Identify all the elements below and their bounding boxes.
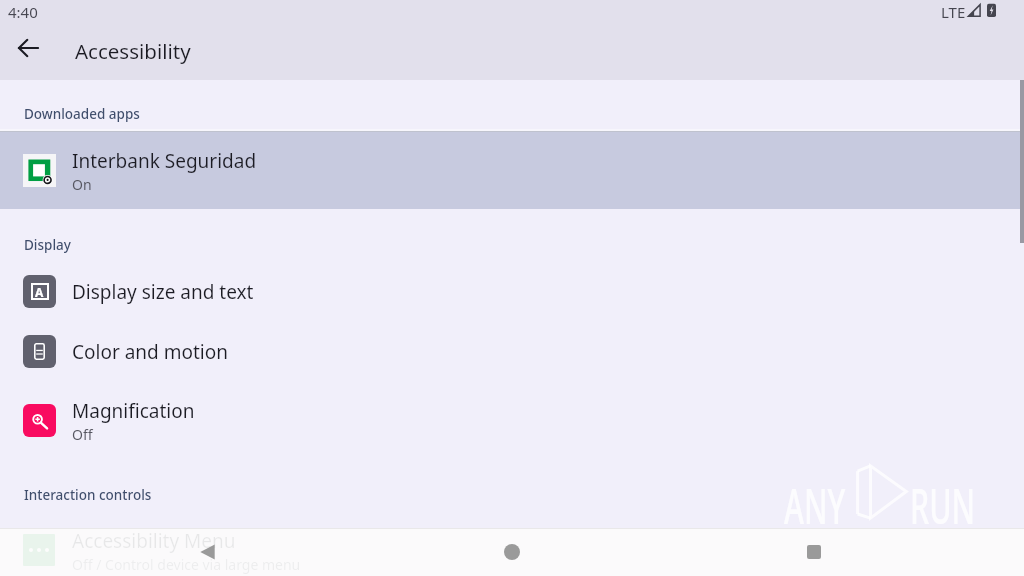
- staticText: A: [35, 284, 44, 300]
- staticText: Downloaded apps: [24, 105, 140, 123]
- staticText: ANY: [784, 472, 845, 539]
- staticText: LTE: [941, 2, 966, 22]
- staticText: Display size and text: [72, 279, 254, 305]
- staticText: Accessibility: [75, 37, 191, 65]
- button[interactable]: Magnification: [0, 390, 1024, 450]
- staticText: On: [72, 175, 92, 194]
- button[interactable]: Home: [480, 528, 544, 576]
- staticText: Accessibility Menu: [72, 528, 236, 554]
- button[interactable]: Interbank Seguridad: [0, 131, 1024, 209]
- button[interactable]: Back: [175, 528, 239, 576]
- staticText: Off / Control device via large menu: [72, 555, 301, 574]
- staticText: RUN: [910, 472, 976, 539]
- staticText: Magnification: [72, 398, 195, 424]
- staticText: Interaction controls: [24, 486, 152, 504]
- button[interactable]: Navigate up: [10, 30, 46, 66]
- staticText: Display: [24, 236, 71, 254]
- staticText: Color and motion: [72, 339, 228, 365]
- button[interactable]: Recent apps: [782, 528, 846, 576]
- button[interactable]: Accessibility Menu: [0, 520, 1024, 576]
- button[interactable]: A: [0, 261, 1024, 321]
- staticText: Interbank Seguridad: [72, 148, 257, 174]
- staticText: 4:40: [8, 2, 38, 22]
- staticText: Off: [72, 425, 93, 444]
- button[interactable]: Color and motion: [0, 321, 1024, 381]
